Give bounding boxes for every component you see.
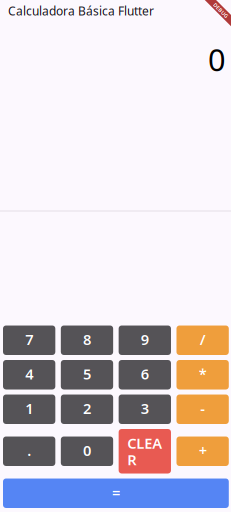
staticText: +: [199, 440, 207, 460]
button[interactable]: 9: [119, 325, 171, 355]
staticText: Calculadora Básica Flutter: [8, 3, 154, 19]
staticText: 9: [141, 329, 149, 349]
button[interactable]: 2: [61, 394, 113, 424]
staticText: 8: [83, 329, 91, 349]
button[interactable]: 3: [119, 394, 171, 424]
staticText: 6: [141, 364, 149, 383]
button[interactable]: 4: [3, 360, 55, 389]
staticText: 7: [25, 329, 33, 349]
button[interactable]: 1: [3, 394, 55, 424]
staticText: .: [27, 440, 31, 460]
staticText: 4: [25, 364, 33, 383]
staticText: 2: [83, 398, 91, 418]
button[interactable]: 0: [61, 436, 113, 466]
button[interactable]: 7: [3, 325, 55, 355]
button[interactable]: -: [176, 394, 229, 424]
button[interactable]: 6: [119, 360, 171, 389]
staticText: 0: [83, 440, 91, 460]
staticText: 5: [83, 364, 91, 383]
button[interactable]: +: [176, 436, 229, 466]
staticText: 0: [208, 39, 226, 80]
staticText: =: [112, 482, 120, 502]
staticText: *: [199, 364, 207, 383]
button[interactable]: 5: [61, 360, 113, 389]
staticText: R: [127, 450, 136, 469]
button[interactable]: *: [176, 360, 229, 389]
staticText: DEBUG: [211, 7, 230, 14]
staticText: 1: [25, 398, 33, 418]
staticText: CLEA: [127, 433, 162, 453]
staticText: -: [200, 398, 205, 418]
button[interactable]: /: [176, 325, 229, 355]
staticText: 3: [141, 398, 149, 418]
staticText: /: [200, 329, 206, 349]
button[interactable]: CLEA: [119, 429, 171, 473]
button[interactable]: 8: [61, 325, 113, 355]
button[interactable]: =: [3, 478, 229, 508]
button[interactable]: .: [3, 436, 55, 466]
